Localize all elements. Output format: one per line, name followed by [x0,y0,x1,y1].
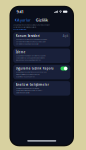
staticText: Apple ile paylaşılan teşhis ve kullanım [16,87,39,89]
staticText: verilerinize nasıl eriştiğini denetleyin… [13,26,36,28]
staticText: Uygulamaların verilerinize ve sensörlere… [16,71,47,73]
staticText: Uygulamaların konumunuza, fotoğraflarını… [13,24,50,26]
button[interactable]: Analiz ve Geliştirmeler [16,83,68,87]
staticText: Analiz ve Geliştirmeler [16,83,49,86]
button[interactable]: Konum Servisleri [16,34,68,38]
staticText: sıklıkla eriştiğini ve hangi alan adları… [16,74,40,75]
staticText: Uygulamaların sizi diğer şirketlerin uyg… [16,55,46,57]
staticText: Konumunuzu kullanan uygulamaları ve sist… [16,39,47,40]
staticText: verdiğiniz uygulamalarla paylaşılır. [16,43,38,45]
button[interactable]: Daha fazla bilgi edinin… [13,28,27,31]
staticText: Uygulama Gizlilik Raporu [16,67,54,70]
staticText: bağlantı kurduğunu görün. [16,76,35,78]
staticText: geliştirmek için kullanılır. [16,92,29,94]
button[interactable]: İzleme [16,50,68,54]
staticText: 9:41 [16,9,23,14]
button[interactable]: Uygulama Gizlilik Raporu [16,66,68,71]
staticText: Gizlilik [36,17,48,23]
staticText: ve web siteleri arasında izlemesini dene… [16,57,45,59]
staticText: Açık [63,34,68,38]
staticText: Konum Servisleri [16,34,40,38]
button[interactable]: Ayarlar [11,16,31,24]
staticText: Ayarlar [17,17,31,23]
staticText: servislerini yönetin. Konumunuz yalnızca… [16,41,46,43]
staticText: verilerini denetleyin. Bu veriler ürünle… [16,90,42,91]
staticText: Daha fazla bilgi edinin… [13,29,27,30]
staticText: İstek gönderen uygulamaları görün. [16,59,41,61]
staticText: İzleme [16,50,26,54]
